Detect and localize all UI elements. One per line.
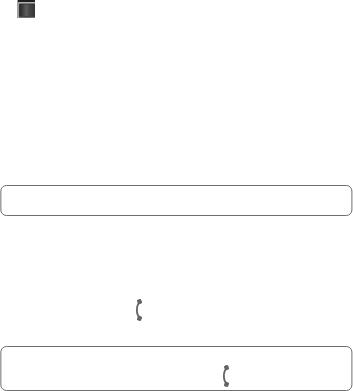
button[interactable]: Call [222, 365, 229, 387]
button[interactable]: Call [135, 299, 142, 321]
button[interactable]: Apps [17, 0, 35, 18]
button[interactable] [0, 184, 353, 218]
button[interactable]: Call [0, 344, 353, 391]
